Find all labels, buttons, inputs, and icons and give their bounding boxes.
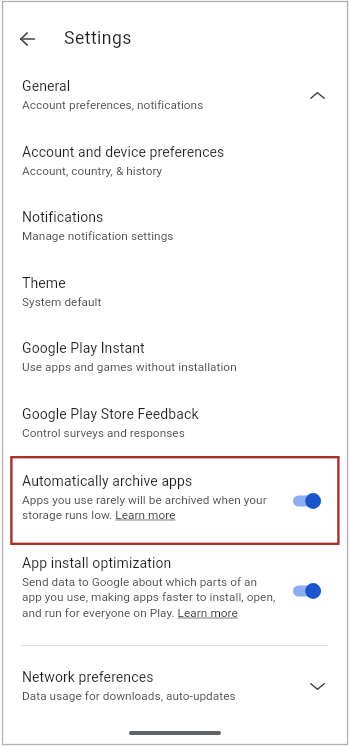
staticText: Theme: [22, 275, 66, 291]
button[interactable]: Google Play Store Feedback: [0, 390, 350, 456]
staticText: Automatically archive apps: [22, 473, 193, 489]
button[interactable]: Toggle setting: [284, 484, 330, 518]
button[interactable]: App install optimization: [0, 545, 350, 637]
staticText: Settings: [64, 28, 132, 49]
staticText: Google Play Instant: [22, 340, 145, 356]
staticText: Account, country, & history: [22, 164, 163, 178]
staticText: Network preferences: [22, 669, 154, 685]
staticText: Use apps and games without installation: [22, 360, 237, 374]
staticText: Google Play Store Feedback: [22, 406, 199, 422]
staticText: Apps you use rarely will be archived whe…: [22, 493, 276, 522]
button[interactable]: Theme: [0, 259, 350, 324]
button[interactable]: General: [0, 62, 350, 128]
button[interactable]: Expand section: [302, 671, 332, 701]
staticText: Account preferences, notifications: [22, 98, 204, 112]
button[interactable]: Google Play Instant: [0, 324, 350, 390]
button[interactable]: Network preferences: [0, 653, 350, 718]
staticText: Notifications: [22, 209, 104, 225]
staticText: Data usage for downloads, auto-updates: [22, 689, 236, 703]
staticText: Manage notification settings: [22, 229, 174, 243]
staticText: Control surveys and responses: [22, 426, 185, 440]
staticText: App install optimization: [22, 555, 172, 571]
button[interactable]: Collapse section: [302, 80, 332, 110]
button[interactable]: Notifications: [0, 193, 350, 259]
button[interactable]: Navigate back: [11, 23, 43, 55]
button[interactable]: Automatically archive apps: [0, 456, 350, 545]
button[interactable]: Toggle setting: [284, 574, 330, 608]
button[interactable]: Account and device preferences: [0, 128, 350, 193]
staticText: System default: [22, 295, 102, 309]
staticText: Account and device preferences: [22, 144, 225, 160]
staticText: General: [22, 78, 71, 94]
staticText: Send data to Google about which parts of…: [22, 575, 276, 620]
